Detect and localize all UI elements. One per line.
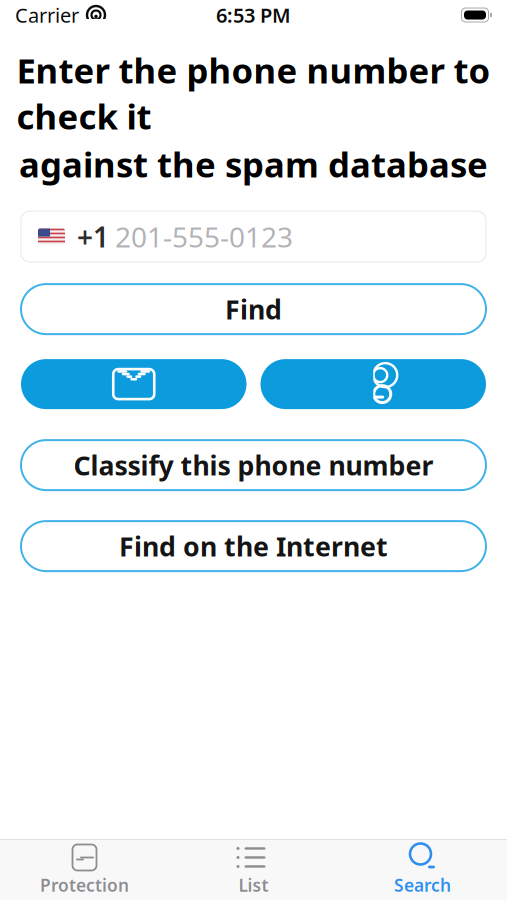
button[interactable]: Find	[21, 284, 486, 334]
staticText: +1	[77, 218, 109, 255]
button[interactable]: Find on the Internet	[21, 521, 486, 571]
button[interactable]: Classify this phone number	[21, 440, 486, 490]
button[interactable]: Call this number	[260, 359, 486, 409]
staticText: Classify this phone number	[73, 447, 433, 483]
button[interactable]: Search	[338, 840, 507, 900]
button[interactable]: Protection	[0, 840, 169, 900]
staticText: against the spam database	[19, 141, 488, 187]
staticText: 6:53 PM	[216, 2, 291, 28]
button[interactable]: Send a message	[21, 359, 246, 409]
staticText: Enter the phone number to check it	[16, 47, 490, 139]
staticText: Search	[394, 873, 451, 896]
staticText: Find on the Internet	[119, 528, 388, 564]
staticText: Protection	[40, 873, 129, 896]
button[interactable]: List	[169, 840, 338, 900]
staticText: List	[238, 873, 268, 896]
staticText: Find	[225, 291, 282, 327]
staticText: 201-555-0123	[115, 218, 293, 255]
staticText: Carrier	[15, 2, 79, 28]
